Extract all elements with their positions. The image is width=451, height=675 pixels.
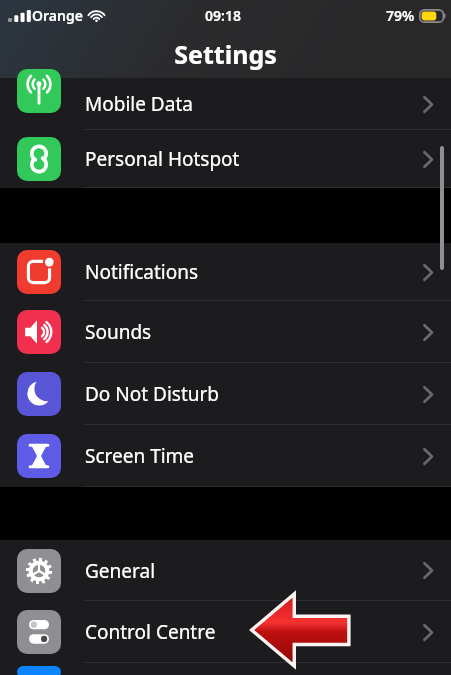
button[interactable]: Display and Brightness (0, 663, 451, 675)
staticText: General (85, 558, 156, 584)
staticText: Screen Time (85, 443, 195, 469)
staticText: Settings (0, 37, 451, 71)
staticText: Notifications (85, 259, 199, 285)
staticText: 79% (386, 6, 415, 25)
other: Do Not Disturb (423, 386, 433, 403)
other: Mobile Data (423, 96, 433, 113)
button[interactable]: Control Centre (0, 601, 451, 663)
button[interactable]: Sounds (0, 301, 451, 363)
staticText: Mobile Data (85, 91, 193, 117)
other: Sounds (423, 324, 433, 341)
button[interactable]: Mobile Data (0, 78, 451, 130)
staticText: 09:18 (205, 6, 241, 25)
other: Notifications (423, 264, 433, 281)
staticText: Control Centre (85, 619, 216, 645)
button[interactable]: General (0, 540, 451, 601)
staticText: Sounds (85, 319, 152, 345)
staticText: Orange (32, 6, 83, 25)
other: Personal Hotspot (423, 151, 433, 168)
staticText: Personal Hotspot (85, 146, 240, 172)
button[interactable]: Do Not Disturb (0, 363, 451, 425)
staticText: Do Not Disturb (85, 381, 220, 407)
button[interactable]: Personal Hotspot (0, 130, 451, 188)
other: Screen Time (423, 448, 433, 465)
button[interactable]: Screen Time (0, 425, 451, 487)
other: General (423, 562, 433, 579)
other: Control Centre (423, 624, 433, 641)
button[interactable]: Notifications (0, 243, 451, 301)
